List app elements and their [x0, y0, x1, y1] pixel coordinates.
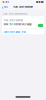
staticText: 9:41 [2, 0, 8, 4]
button[interactable]: ‹ [1, 4, 8, 9]
staticText: ‹ [1, 4, 3, 10]
button[interactable]: Learn more about Trust [0, 30, 46, 34]
staticText: Show my membership badge [3, 23, 31, 26]
staticText: Trust Store Member [3, 19, 23, 22]
staticText: Trust Store Membership [3, 13, 27, 15]
staticText: Trust Store Member [13, 6, 33, 8]
button[interactable]: Show my membership badge [38, 24, 43, 27]
staticText: Learn more about Trust [3, 31, 26, 34]
staticText: Back [4, 6, 8, 8]
